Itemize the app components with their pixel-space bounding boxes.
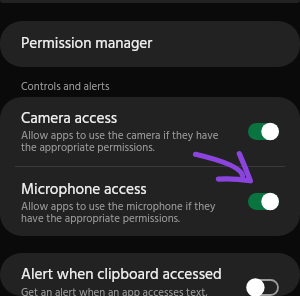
staticText: Get an alert when an app accesses text, … [21, 284, 208, 296]
staticText: Controls and alerts [21, 78, 110, 96]
button[interactable]: Switch off [248, 279, 279, 296]
staticText: Permission manager [21, 32, 153, 56]
staticText: Allow apps to use the camera if they hav… [21, 127, 219, 157]
button[interactable]: Alert when clipboard accessed [0, 253, 300, 296]
staticText: Camera access [21, 107, 118, 131]
button[interactable]: Switch on [248, 123, 279, 140]
button[interactable]: Switch on [248, 193, 279, 210]
button[interactable]: Microphone access [0, 167, 300, 236]
staticText: Allow apps to use the microphone if they… [21, 198, 216, 228]
button[interactable]: Camera access [0, 97, 300, 166]
button[interactable]: Permission manager [0, 21, 300, 67]
staticText: Alert when clipboard accessed [21, 263, 222, 287]
staticText: Microphone access [21, 178, 147, 202]
